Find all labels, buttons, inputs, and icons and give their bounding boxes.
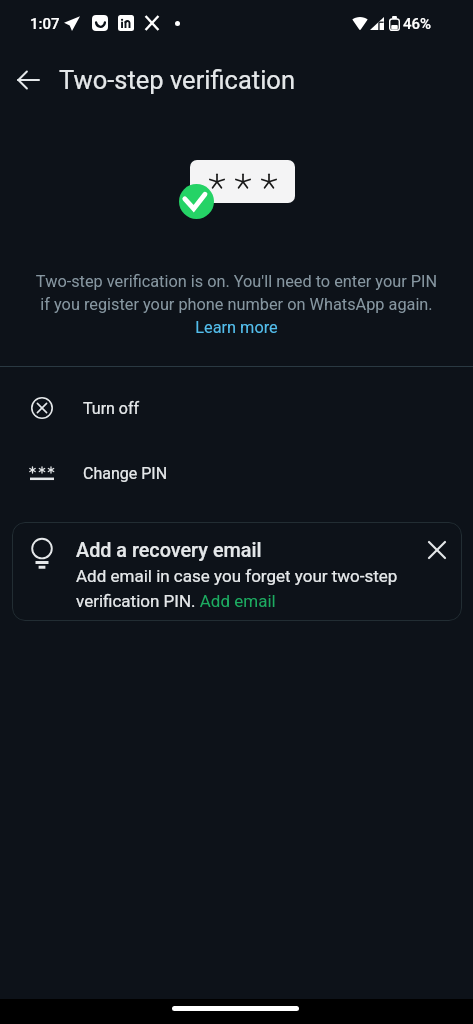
staticText: Change PIN [83, 464, 168, 483]
staticText: Add email in case you forget your two-st… [76, 566, 426, 611]
staticText: Learn more [195, 318, 278, 337]
button[interactable]: Turn off [0, 376, 473, 441]
staticText: Two-step verification is on. You'll need… [34, 272, 439, 314]
button[interactable]: Back [6, 58, 50, 102]
button[interactable]: Change PIN [0, 441, 473, 506]
button[interactable]: Learn more [195, 318, 278, 337]
staticText: 1:07 [30, 15, 60, 33]
staticText: Turn off [83, 399, 140, 418]
staticText: 46% [403, 15, 432, 33]
staticText: Add a recovery email [76, 539, 262, 562]
button[interactable]: Dismiss [422, 535, 452, 565]
button[interactable]: Add a recovery email [12, 522, 462, 621]
staticText: Two-step verification [59, 65, 295, 95]
